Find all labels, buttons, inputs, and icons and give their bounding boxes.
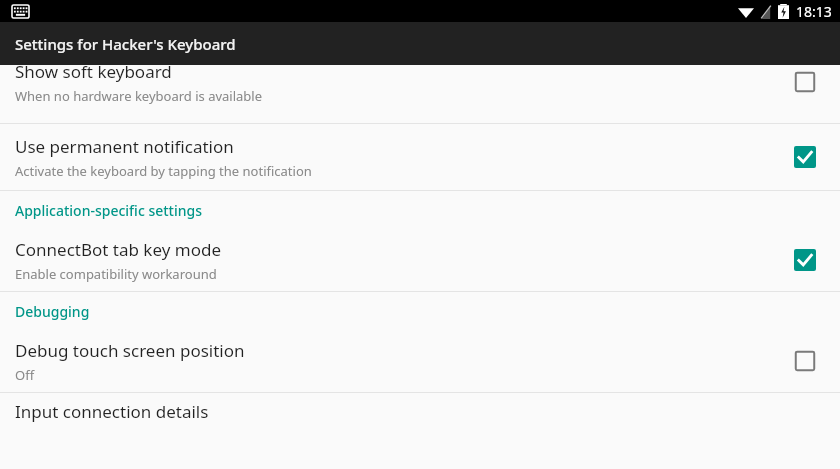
button[interactable]: Show soft keyboard xyxy=(0,53,840,111)
staticText: Off xyxy=(15,366,35,384)
staticText: Show soft keyboard xyxy=(15,60,172,83)
button[interactable]: ConnectBot tab key mode checkbox, checke… xyxy=(788,243,822,277)
staticText: Input connection details xyxy=(15,400,209,423)
staticText: Enable compatibility workaround xyxy=(15,265,217,283)
button[interactable]: Use permanent notification xyxy=(0,124,840,190)
button[interactable]: ConnectBot tab key mode xyxy=(0,229,840,291)
button[interactable]: Debug touch screen position xyxy=(0,330,840,392)
button[interactable]: Use permanent notification checkbox, che… xyxy=(788,140,822,174)
button[interactable]: Debug touch screen position checkbox, un… xyxy=(788,344,822,378)
staticText: Debugging xyxy=(15,302,90,321)
button[interactable]: Input connection details xyxy=(0,393,840,430)
staticText: Use permanent notification xyxy=(15,135,234,158)
staticText: When no hardware keyboard is available xyxy=(15,87,263,105)
staticText: Application-specific settings xyxy=(15,201,202,220)
staticText: Debug touch screen position xyxy=(15,339,245,362)
staticText: Settings for Hacker's Keyboard xyxy=(15,34,236,54)
staticText: 18:13 xyxy=(796,2,832,21)
button[interactable]: Show soft keyboard checkbox, unchecked xyxy=(788,65,822,99)
staticText: ConnectBot tab key mode xyxy=(15,238,222,261)
staticText: Activate the keyboard by tapping the not… xyxy=(15,162,312,180)
